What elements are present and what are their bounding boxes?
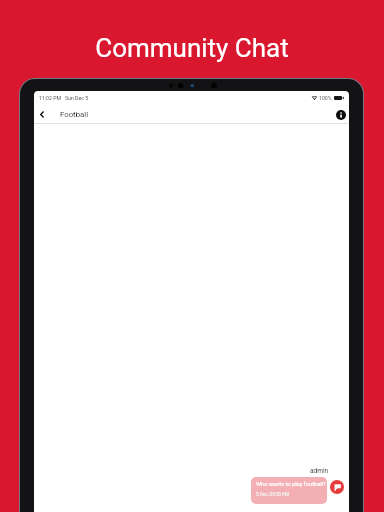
button[interactable]: Back (35, 108, 48, 121)
button[interactable]: Chat info (334, 108, 348, 122)
staticText: Who wants to play football? (256, 481, 326, 488)
staticText: Football (60, 110, 89, 119)
button[interactable]: Report message (330, 480, 344, 494)
button[interactable]: Who wants to play football? (251, 477, 327, 504)
staticText: Community Chat (0, 33, 384, 63)
staticText: 11:02 PM (39, 95, 62, 101)
staticText: 100% (319, 95, 332, 101)
staticText: 5 Dec, 09:53 PM (256, 492, 290, 497)
staticText: admin (310, 467, 329, 475)
staticText: Sun Dec 5 (65, 95, 89, 101)
